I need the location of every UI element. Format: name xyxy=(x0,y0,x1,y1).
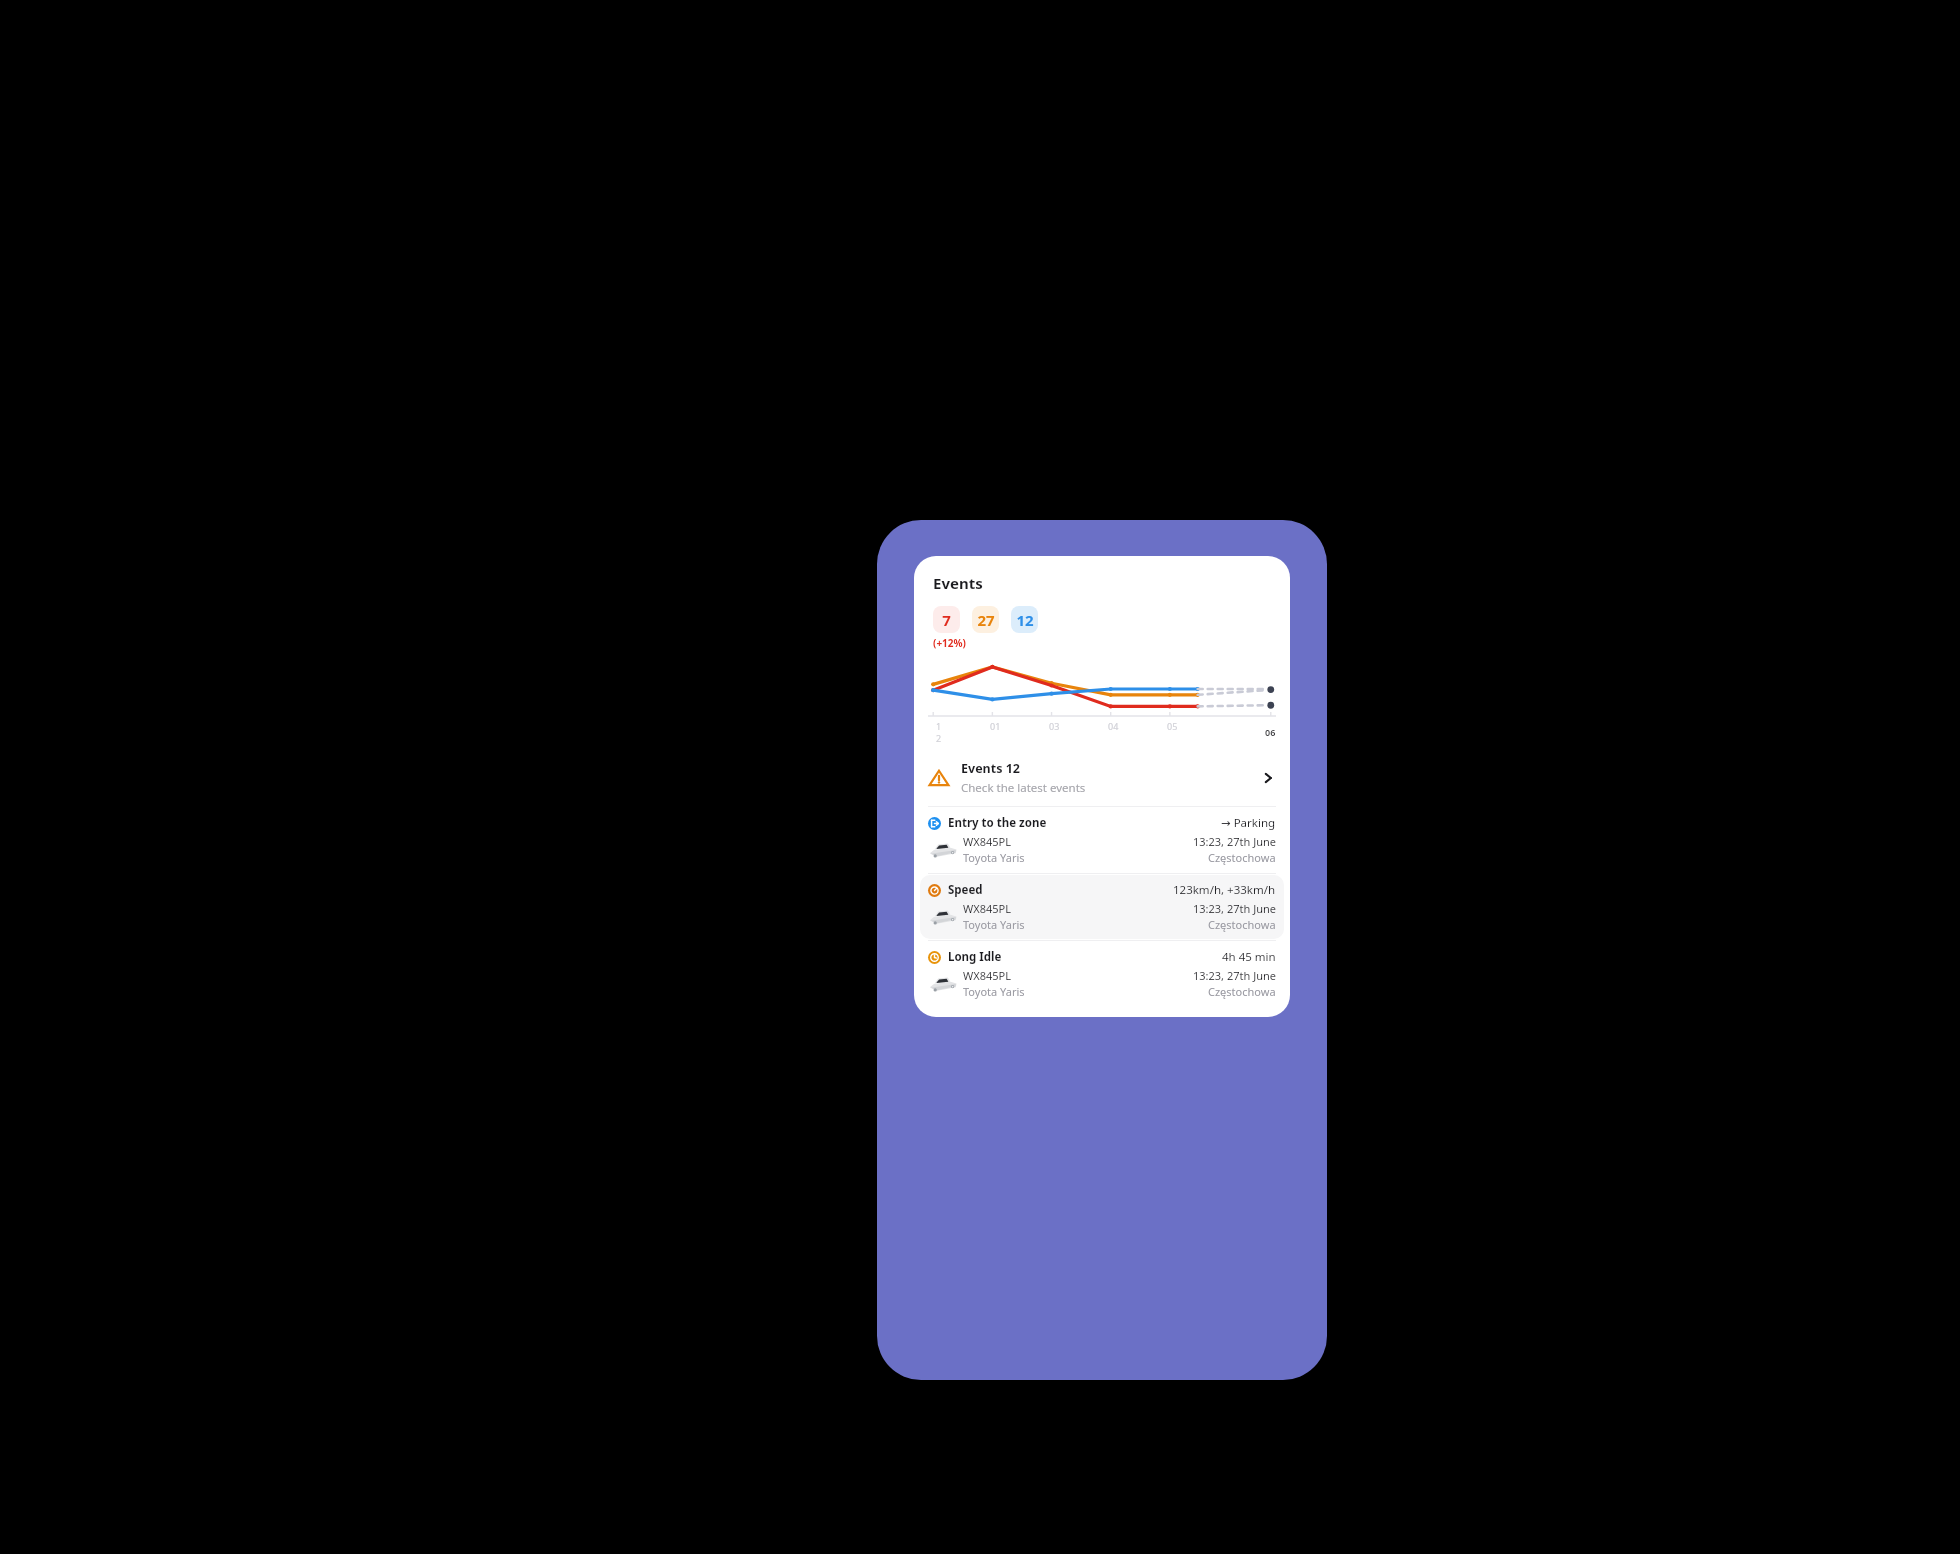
staticText: Events 12 xyxy=(961,760,1020,777)
staticText: Toyota Yaris xyxy=(963,984,1025,999)
staticText: WX845PL xyxy=(963,834,1011,849)
button[interactable]: 7 xyxy=(933,606,960,633)
staticText: Events xyxy=(933,573,983,593)
staticText: 01 xyxy=(990,720,1001,732)
other: Open events xyxy=(1260,770,1276,786)
staticText: Long Idle xyxy=(948,949,1002,965)
staticText: Częstochowa xyxy=(1208,984,1276,999)
staticText: 4h 45 min xyxy=(1222,949,1276,965)
button[interactable]: 12 xyxy=(1011,606,1038,633)
other: Warning xyxy=(928,767,950,789)
other: Vehicle xyxy=(928,907,958,926)
staticText: Check the latest events xyxy=(961,780,1086,796)
staticText: 05 xyxy=(1167,720,1178,732)
staticText: 03 xyxy=(1049,720,1060,732)
staticText: 04 xyxy=(1108,720,1119,732)
other: Long idle xyxy=(928,951,941,964)
staticText: WX845PL xyxy=(963,901,1011,916)
staticText: 27 xyxy=(977,610,995,630)
staticText: Toyota Yaris xyxy=(963,917,1025,932)
staticText: 13:23, 27th June xyxy=(1193,901,1276,916)
other: Speed xyxy=(928,884,941,897)
staticText: 12 xyxy=(1016,610,1034,630)
staticText: 13:23, 27th June xyxy=(1193,968,1276,983)
other: Entry to the zone xyxy=(928,817,941,830)
staticText: Speed xyxy=(948,882,983,898)
other: Vehicle xyxy=(928,840,958,859)
staticText: Toyota Yaris xyxy=(963,850,1025,865)
button[interactable]: Speed xyxy=(920,875,1284,939)
button[interactable]: Warning xyxy=(914,750,1290,806)
staticText: → Parking xyxy=(1221,815,1276,831)
staticText: WX845PL xyxy=(963,968,1011,983)
staticText: 123km/h, +33km/h xyxy=(1173,882,1276,898)
staticText: 12 xyxy=(936,720,942,744)
staticText: Częstochowa xyxy=(1208,917,1276,932)
staticText: (+12%) xyxy=(933,636,966,650)
button[interactable]: Entry to the zone xyxy=(920,808,1284,872)
staticText: 7 xyxy=(942,610,951,630)
staticText: 06 xyxy=(1265,726,1276,738)
staticText: Entry to the zone xyxy=(948,815,1047,831)
button[interactable]: 27 xyxy=(972,606,999,633)
staticText: Częstochowa xyxy=(1208,850,1276,865)
button[interactable]: Long idle xyxy=(920,942,1284,1006)
staticText: 13:23, 27th June xyxy=(1193,834,1276,849)
other: Vehicle xyxy=(928,974,958,993)
